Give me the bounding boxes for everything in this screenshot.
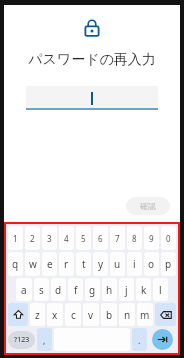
staticText: . [138,334,141,346]
button[interactable]: c [65,303,81,326]
button[interactable]: j [119,278,134,301]
button[interactable]: s [34,278,49,301]
button[interactable]: ?123 [8,331,35,349]
button[interactable]: w [25,252,40,276]
button[interactable]: x [47,303,63,326]
button[interactable]: l [153,278,168,301]
button[interactable]: 確認 [126,197,170,215]
staticText: r [64,257,69,271]
button[interactable]: m [137,303,153,326]
staticText: o [148,257,155,271]
staticText: 6 [98,233,103,244]
button[interactable]: d [51,278,66,301]
button[interactable]: Backspace [155,303,176,326]
staticText: 0 [166,233,171,244]
staticText: j [125,283,128,297]
staticText: a [21,283,27,297]
button[interactable]: 4 [59,226,74,250]
button[interactable]: Shift [8,303,28,326]
button[interactable]: 0 [161,226,176,250]
staticText: i [133,257,136,271]
staticText: p [165,257,172,271]
button[interactable]: 3 [42,226,57,250]
staticText: 3 [47,233,52,244]
button[interactable]: 9 [144,226,159,250]
staticText: g [89,283,96,297]
staticText: パスワードの再入力 [26,51,158,69]
button[interactable]: q [8,252,23,276]
staticText: e [47,257,53,271]
staticText: d [55,283,62,297]
button[interactable]: 6 [93,226,108,250]
button[interactable]: n [119,303,135,326]
button[interactable]: 1 [8,226,23,250]
button[interactable]: e [42,252,57,276]
staticText: ?123 [14,335,30,345]
staticText: s [39,283,44,297]
button[interactable]: k [136,278,151,301]
button[interactable]: , [37,328,52,351]
button[interactable]: 7 [110,226,125,250]
staticText: y [98,257,104,271]
button[interactable]: g [85,278,100,301]
staticText: t [82,257,86,271]
button[interactable]: a [16,278,32,301]
staticText: z [35,308,40,322]
button[interactable]: z [30,303,45,326]
button[interactable]: r [59,252,74,276]
staticText: 7 [115,233,120,244]
button[interactable]: b [101,303,117,326]
button[interactable]: i [127,252,142,276]
button[interactable]: f [68,278,83,301]
other: Lock [82,18,102,38]
staticText: 確認 [140,201,156,211]
staticText: v [88,308,94,322]
staticText: h [106,283,113,297]
staticText: f [74,283,78,297]
staticText: , [43,334,46,346]
staticText: 1 [13,233,18,244]
staticText: m [140,308,150,322]
staticText: 8 [132,233,137,244]
button[interactable]: 5 [76,226,91,250]
button[interactable]: 2 [25,226,40,250]
button[interactable]: t [76,252,91,276]
button[interactable]: h [102,278,117,301]
staticText: 5 [81,233,86,244]
staticText: u [114,257,121,271]
button[interactable]: u [110,252,125,276]
staticText: l [159,283,162,297]
staticText: x [52,308,58,322]
staticText: 2 [30,233,35,244]
button[interactable]: y [93,252,108,276]
button[interactable]: Enter [152,329,173,350]
staticText: k [141,283,147,297]
staticText: n [124,308,131,322]
staticText: w [29,257,37,271]
button[interactable]: v [83,303,99,326]
staticText: q [12,257,19,271]
staticText: 4 [64,233,69,244]
staticText: c [71,308,76,322]
button[interactable]: o [144,252,159,276]
staticText: b [106,308,113,322]
staticText: 9 [149,233,154,244]
button[interactable]: . [132,328,147,351]
button[interactable]: 8 [127,226,142,250]
button[interactable] [26,86,158,110]
button[interactable]: p [161,252,176,276]
